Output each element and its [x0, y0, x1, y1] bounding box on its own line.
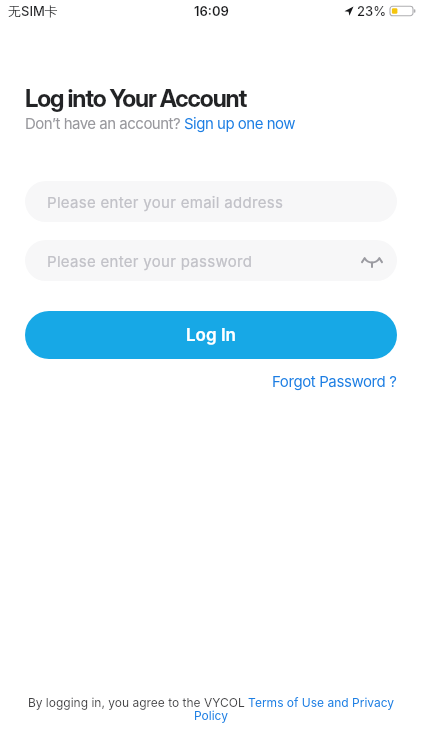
- staticText: Log into Your Account: [25, 84, 247, 113]
- staticText: Please enter your password: [47, 252, 253, 270]
- button[interactable]: Log In: [25, 311, 397, 359]
- staticText: 23%: [357, 3, 387, 19]
- staticText: Log In: [186, 325, 236, 346]
- staticText: Don’t have an account?: [25, 114, 184, 132]
- button[interactable]: Please enter your email address: [25, 181, 397, 222]
- staticText: 16:09: [194, 3, 229, 19]
- button[interactable]: Forgot Password ?: [272, 372, 397, 390]
- staticText: 无SIM卡: [8, 3, 58, 19]
- button[interactable]: Please enter your password: [25, 240, 397, 281]
- button[interactable]: By logging in, you agree to the VYCOL Te…: [20, 695, 402, 723]
- staticText: Please enter your email address: [47, 193, 284, 211]
- button[interactable]: Sign up one now: [184, 114, 295, 132]
